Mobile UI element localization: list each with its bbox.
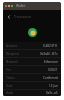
button[interactable]: Status (3, 74, 61, 81)
staticText: Fee (6, 68, 11, 72)
staticText: 0.482 ETH (43, 44, 58, 48)
button[interactable]: Date (3, 82, 61, 89)
staticText: Amount (6, 44, 18, 48)
button[interactable]: Amount (3, 42, 61, 49)
button[interactable]: Network (3, 58, 61, 65)
staticText: Hash (6, 91, 14, 95)
staticText: Wallet (16, 4, 26, 8)
staticText: 0.0021 (48, 68, 58, 72)
staticText: 0x3a4f...f21c (40, 52, 58, 56)
staticText: Ethereum (44, 60, 58, 64)
staticText: Network (6, 60, 19, 64)
staticText: Date (6, 84, 13, 88)
staticText: Transaction (14, 15, 32, 19)
button[interactable]: Recipient (3, 50, 61, 57)
button[interactable]: Back (6, 14, 12, 20)
button[interactable]: Fee (3, 66, 61, 73)
staticText: Recipient (6, 52, 20, 56)
staticText: 0x9c..a3 (46, 91, 58, 95)
staticText: Status (6, 76, 15, 80)
staticText: 12 Jun (49, 84, 58, 88)
button[interactable]: Hash (3, 90, 61, 96)
staticText: Confirmed (43, 76, 58, 80)
